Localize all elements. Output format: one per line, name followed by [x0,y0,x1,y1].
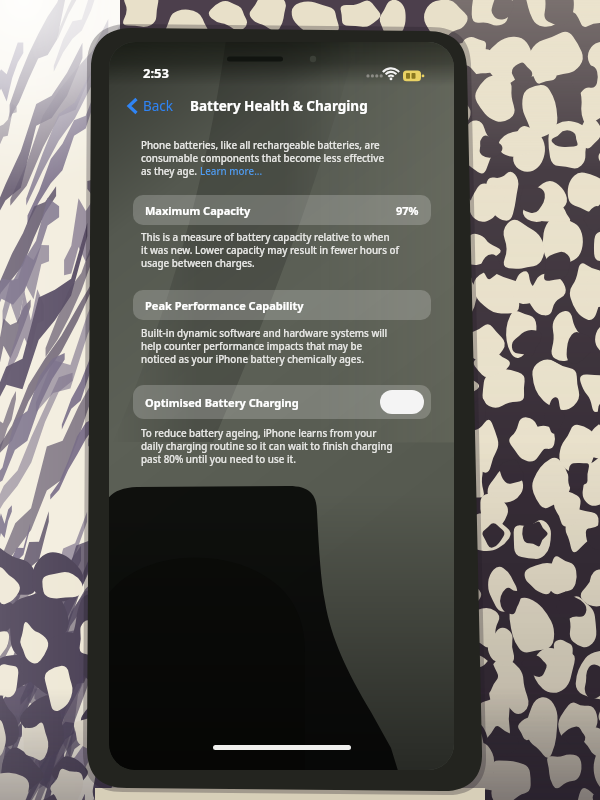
staticText: 2:53 [143,64,169,82]
button[interactable]: Learn more... [200,165,263,178]
button[interactable]: Back [123,97,178,115]
staticText: as they age. [141,165,200,178]
button[interactable]: Optimised Battery Charging [133,385,431,419]
staticText: past 80% until you need to use it. [141,453,296,466]
staticText: Back [143,97,174,115]
staticText: To reduce battery ageing, iPhone learns … [141,427,377,440]
staticText: Optimised Battery Charging [145,395,299,410]
staticText: Phone batteries, like all rechargeable b… [141,139,380,152]
staticText: 97% [396,203,419,218]
staticText: Built-in dynamic software and hardware s… [141,327,388,340]
button[interactable]: Maximum Capacity [133,195,431,225]
staticText: consumable components that become less e… [141,152,385,165]
button[interactable]: Optimised Battery Charging toggle [380,390,424,414]
staticText: usage between charges. [141,257,255,270]
staticText: noticed as your iPhone battery chemicall… [141,353,364,366]
staticText: it was new. Lower capacity may result in… [141,244,400,257]
staticText: Maximum Capacity [145,203,251,218]
button[interactable]: Peak Performance Capability [133,290,431,320]
staticText: This is a measure of battery capacity re… [141,231,390,244]
staticText: help counter performance impacts that ma… [141,340,363,353]
staticText: daily charging routine so it can wait to… [141,440,393,453]
staticText: Peak Performance Capability [145,298,304,313]
staticText: Battery Health & Charging [190,97,368,115]
